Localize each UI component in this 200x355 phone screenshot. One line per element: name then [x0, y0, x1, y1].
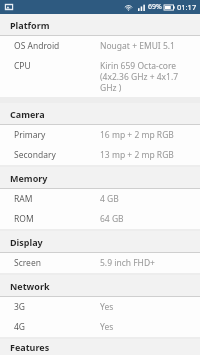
staticText: 4G [14, 321, 100, 333]
button[interactable]: OS Android [0, 36, 200, 56]
button[interactable]: ROM [0, 209, 200, 229]
staticText: Nougat + EMUI 5.1 [100, 40, 194, 52]
staticText: 5.9 inch FHD+ [100, 257, 194, 269]
staticText: 13 mp + 2 mp RGB [100, 149, 194, 161]
staticText: 3G [14, 301, 100, 313]
staticText: Display [10, 236, 43, 248]
button[interactable]: Screen [0, 253, 200, 273]
button[interactable]: Secondary [0, 145, 200, 165]
staticText: 69% [148, 2, 162, 12]
staticText: Yes [100, 321, 194, 333]
staticText: Screen [14, 257, 100, 269]
staticText: 16 mp + 2 mp RGB [100, 129, 194, 141]
staticText: Platform [10, 19, 50, 31]
staticText: ROM [14, 213, 100, 225]
staticText: Features [10, 341, 50, 353]
staticText: OS Android [14, 40, 100, 52]
staticText: Memory [10, 172, 48, 184]
staticText: RAM [14, 193, 100, 205]
staticText: Camera [10, 108, 45, 120]
other: Screenshot notification [4, 2, 14, 12]
staticText: Kirin 659 Octa-core (4x2.36 GHz + 4x1.7 … [100, 60, 194, 93]
button[interactable]: RAM [0, 189, 200, 209]
staticText: 64 GB [100, 213, 194, 225]
staticText: 4 GB [100, 193, 194, 205]
staticText: Primary [14, 129, 100, 141]
staticText: Network [10, 280, 50, 292]
button[interactable]: Primary [0, 125, 200, 145]
staticText: Yes [100, 301, 194, 313]
staticText: Secondary [14, 149, 100, 161]
staticText: CPU [14, 60, 100, 72]
staticText: 01:17 [177, 2, 197, 12]
button[interactable]: 4G [0, 317, 200, 337]
button[interactable]: 3G [0, 297, 200, 317]
button[interactable]: CPU [0, 56, 200, 97]
